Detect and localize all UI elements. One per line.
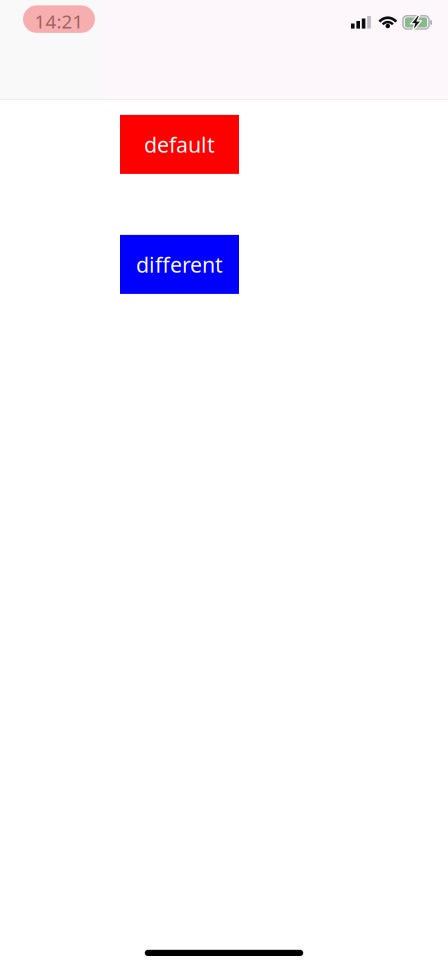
button[interactable]: default bbox=[120, 115, 239, 174]
staticText: different bbox=[136, 250, 223, 278]
button[interactable]: different bbox=[120, 235, 239, 294]
staticText: 14:21 bbox=[34, 9, 83, 34]
staticText: default bbox=[144, 130, 215, 158]
